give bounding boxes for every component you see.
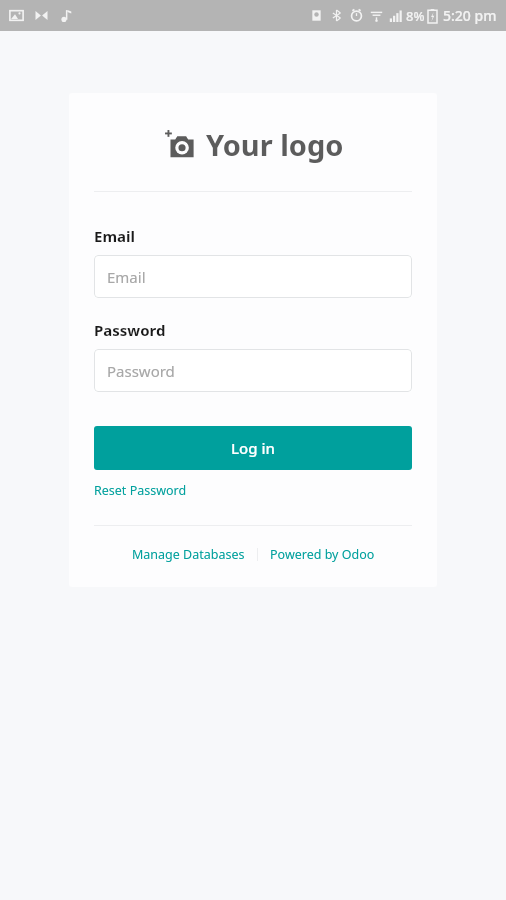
- staticText: Powered by Odoo: [270, 546, 375, 563]
- staticText: 8%: [406, 7, 425, 25]
- button[interactable]: Powered by Odoo: [266, 544, 379, 565]
- staticText: Log in: [231, 438, 275, 458]
- button[interactable]: Log in: [94, 426, 412, 470]
- button[interactable]: Manage Databases: [128, 544, 249, 565]
- staticText: Password: [107, 361, 175, 381]
- staticText: Email: [94, 226, 135, 246]
- staticText: 5:20 pm: [443, 6, 497, 25]
- staticText: Reset Password: [94, 482, 187, 499]
- staticText: Manage Databases: [132, 546, 245, 563]
- button[interactable]: Reset Password: [94, 480, 187, 501]
- staticText: Password: [94, 320, 166, 340]
- button[interactable]: Password: [94, 349, 412, 392]
- staticText: Email: [107, 267, 146, 287]
- staticText: Your logo: [206, 125, 344, 164]
- button[interactable]: Email: [94, 255, 412, 298]
